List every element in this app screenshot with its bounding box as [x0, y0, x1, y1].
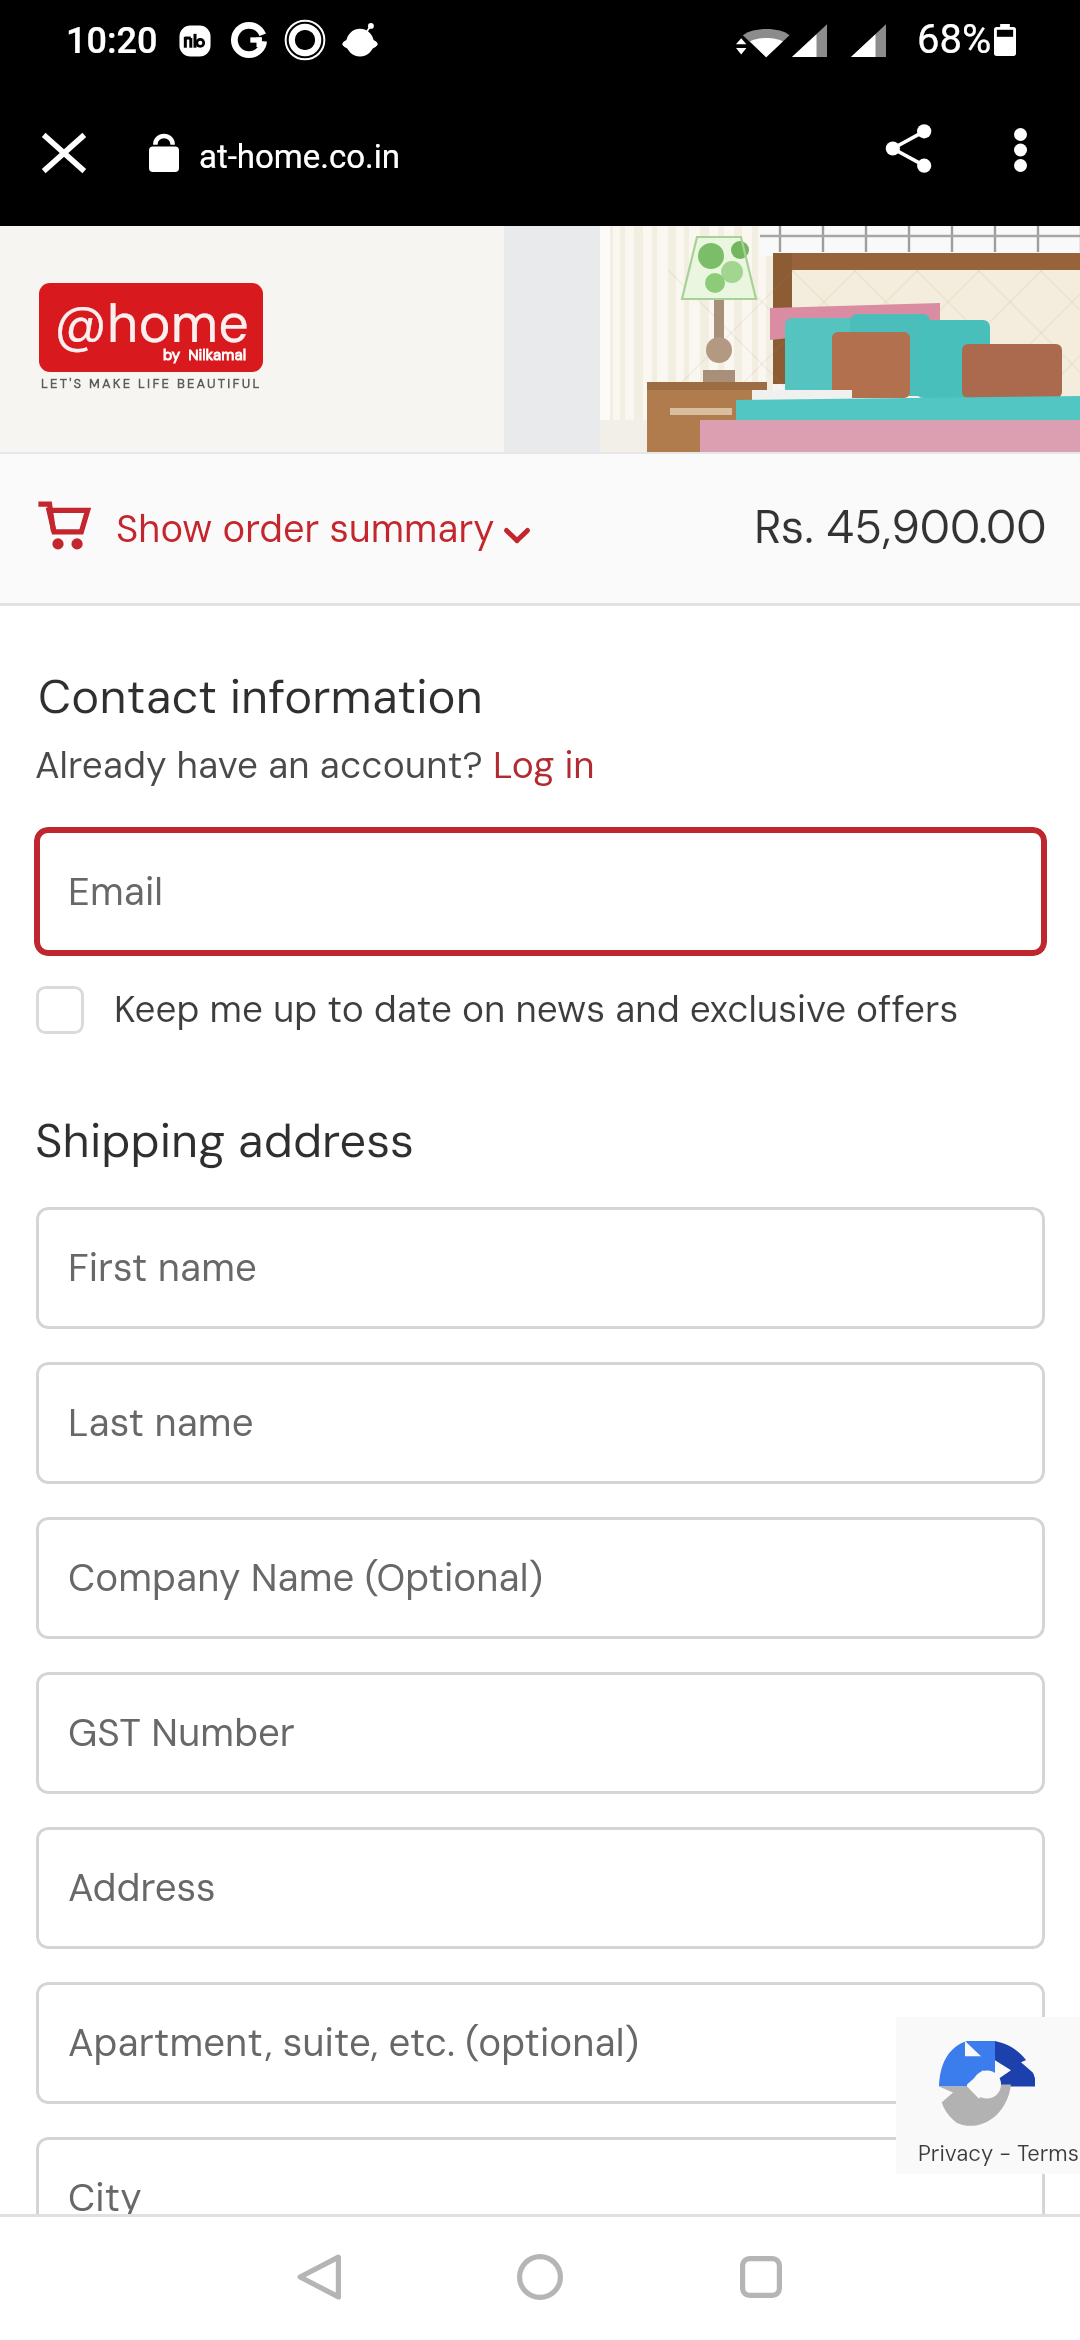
staticText: Shipping address — [35, 1110, 415, 1171]
button[interactable]: Home — [480, 2217, 600, 2337]
staticText: Show order summary — [116, 504, 495, 553]
staticText: Last name — [68, 1398, 254, 1448]
button[interactable]: GST Number — [36, 1672, 1045, 1794]
button[interactable]: First name — [36, 1207, 1045, 1329]
staticText: GST Number — [68, 1708, 295, 1758]
staticText: LET'S MAKE LIFE BEAUTIFUL — [41, 375, 262, 392]
button[interactable]: Apartment, suite, etc. (optional) — [36, 1982, 1045, 2104]
staticText: @home — [54, 288, 249, 358]
button[interactable]: Recent apps — [701, 2217, 821, 2337]
button[interactable]: reCAPTCHA Privacy and Terms — [896, 2017, 1080, 2174]
button[interactable]: Share — [863, 105, 953, 195]
staticText: by Nilkamal — [163, 345, 247, 365]
staticText: Already have an account? — [35, 741, 493, 789]
staticText: at-home.co.in — [199, 137, 401, 176]
button[interactable]: Email — [34, 827, 1047, 956]
staticText: Contact information — [38, 666, 483, 727]
staticText: 68% — [917, 16, 992, 63]
staticText: Keep me up to date on news and exclusive… — [114, 985, 959, 1033]
staticText: Apartment, suite, etc. (optional) — [68, 2018, 639, 2068]
button[interactable]: Log in — [493, 741, 595, 789]
button[interactable]: Last name — [36, 1362, 1045, 1484]
button[interactable]: Company Name (Optional) — [36, 1517, 1045, 1639]
staticText: Rs. 45,900.00 — [754, 497, 1047, 557]
button[interactable]: Show order summary — [0, 454, 1080, 603]
staticText: 10:20 — [66, 20, 158, 62]
button[interactable]: City — [36, 2137, 1045, 2259]
staticText: Address — [68, 1863, 216, 1913]
staticText: Company Name (Optional) — [68, 1553, 543, 1603]
button[interactable]: Back — [259, 2217, 379, 2337]
staticText: First name — [68, 1243, 257, 1293]
staticText: Email — [68, 867, 163, 917]
staticText: City — [68, 2173, 142, 2223]
button[interactable]: More options — [975, 105, 1065, 195]
button[interactable]: Close — [20, 109, 108, 197]
button[interactable]: Keep me up to date on news and exclusive… — [36, 986, 959, 1034]
staticText: Privacy - Terms — [918, 2139, 1079, 2168]
button[interactable]: Address — [36, 1827, 1045, 1949]
